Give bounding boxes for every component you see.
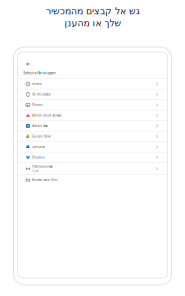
staticText: Select a file to open <box>23 70 55 75</box>
button[interactable]: Dropbox <box>17 152 167 162</box>
staticText: Recent <box>32 82 42 86</box>
staticText: Adobe cloud storage <box>32 114 62 117</box>
staticText: Gmail <box>32 169 39 173</box>
button[interactable]: Google Drive <box>17 131 167 141</box>
button[interactable]: PDFs from email <box>17 162 167 174</box>
staticText: Dropbox <box>32 156 44 159</box>
button[interactable]: Photos <box>17 99 167 110</box>
staticText: שלך או מהענן <box>64 18 121 28</box>
button[interactable]: Recent <box>17 78 167 89</box>
staticText: PDFs from email <box>32 165 53 168</box>
staticText: On this device <box>32 93 51 96</box>
staticText: OneDrive <box>32 145 45 149</box>
button[interactable]: Back <box>17 52 36 70</box>
staticText: Adobe Scan <box>32 124 48 128</box>
button[interactable]: On this device <box>17 89 167 99</box>
button[interactable]: Browse more files <box>17 174 167 185</box>
button[interactable]: Adobe cloud storage <box>17 110 167 120</box>
button[interactable]: OneDrive <box>17 141 167 152</box>
staticText: Browse more files <box>32 178 57 182</box>
staticText: Photos <box>32 103 42 107</box>
staticText: Google Drive <box>32 135 51 138</box>
staticText: גש אל קבצים מהמכשיר <box>45 6 139 16</box>
button[interactable]: Adobe Scan <box>17 120 167 131</box>
